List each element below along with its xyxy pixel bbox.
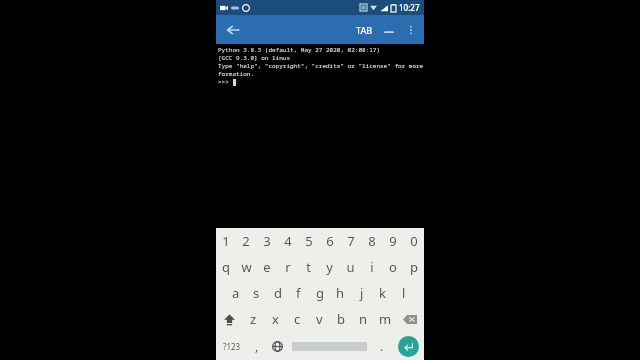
staticText: e bbox=[263, 258, 271, 276]
staticText: r bbox=[285, 258, 291, 276]
staticText: >>> bbox=[218, 78, 233, 86]
staticText: x bbox=[272, 310, 279, 328]
button[interactable]: z bbox=[243, 306, 264, 332]
button[interactable]: 4 bbox=[277, 228, 298, 254]
staticText: k bbox=[379, 284, 386, 302]
staticText: 7 bbox=[347, 232, 355, 250]
button[interactable]: x bbox=[264, 306, 286, 332]
staticText: q bbox=[222, 258, 230, 276]
staticText: 2 bbox=[242, 232, 250, 250]
button[interactable]: , bbox=[247, 332, 267, 360]
staticText: g bbox=[316, 284, 324, 302]
button[interactable]: o bbox=[382, 254, 403, 280]
button[interactable]: 3 bbox=[256, 228, 277, 254]
staticText: o bbox=[389, 258, 397, 276]
button[interactable]: . bbox=[372, 332, 392, 360]
staticText: 9 bbox=[389, 232, 397, 250]
button[interactable]: g bbox=[309, 280, 330, 306]
staticText: w bbox=[241, 258, 252, 276]
button[interactable]: 1 bbox=[216, 228, 236, 254]
staticText: h bbox=[336, 284, 345, 302]
button[interactable]: u bbox=[340, 254, 361, 280]
button[interactable]: 9 bbox=[382, 228, 403, 254]
button[interactable]: k bbox=[372, 280, 393, 306]
staticText: 8 bbox=[368, 232, 376, 250]
button[interactable]: b bbox=[330, 306, 352, 332]
button[interactable]: s bbox=[246, 280, 267, 306]
staticText: l bbox=[402, 284, 406, 302]
staticText: z bbox=[250, 310, 257, 328]
staticText: . bbox=[380, 338, 384, 354]
staticText: b bbox=[337, 310, 345, 328]
staticText: n bbox=[359, 310, 368, 328]
button[interactable]: Change language bbox=[267, 332, 287, 360]
button[interactable]: Python 3.8.3 (default, May 27 2020, 02:0… bbox=[216, 44, 424, 228]
button[interactable]: n bbox=[352, 306, 374, 332]
staticText: Python 3.8.3 (default, May 27 2020, 02:0… bbox=[218, 46, 381, 54]
staticText: Type "help", "copyright", "credits" or "… bbox=[218, 62, 424, 70]
staticText: p bbox=[410, 258, 418, 276]
staticText: 5 bbox=[305, 232, 313, 250]
button[interactable]: TAB bbox=[351, 20, 378, 40]
staticText: d bbox=[274, 284, 282, 302]
button[interactable]: 7 bbox=[340, 228, 361, 254]
button[interactable]: d bbox=[267, 280, 288, 306]
staticText: t bbox=[306, 258, 311, 276]
staticText: m bbox=[379, 310, 392, 328]
button[interactable]: i bbox=[361, 254, 382, 280]
staticText: c bbox=[294, 310, 301, 328]
button[interactable]: Shift bbox=[216, 306, 243, 332]
staticText: f bbox=[296, 284, 301, 302]
staticText: 4 bbox=[284, 232, 292, 250]
staticText: 6 bbox=[326, 232, 334, 250]
staticText: i bbox=[370, 258, 374, 276]
staticText: ?123 bbox=[223, 341, 241, 352]
button[interactable]: v bbox=[308, 306, 330, 332]
button[interactable]: m bbox=[374, 306, 396, 332]
staticText: 0 bbox=[410, 232, 418, 250]
button[interactable]: q bbox=[216, 254, 236, 280]
button[interactable]: j bbox=[351, 280, 372, 306]
staticText: 10:27 bbox=[399, 2, 420, 13]
button[interactable]: c bbox=[286, 306, 308, 332]
button[interactable]: 2 bbox=[236, 228, 256, 254]
button[interactable]: w bbox=[236, 254, 256, 280]
button[interactable]: a bbox=[226, 280, 246, 306]
button[interactable]: 8 bbox=[361, 228, 382, 254]
staticText: v bbox=[316, 310, 323, 328]
button[interactable]: ?123 bbox=[216, 332, 247, 360]
staticText: formation. bbox=[218, 70, 255, 78]
staticText: 3 bbox=[263, 232, 271, 250]
button[interactable]: h bbox=[330, 280, 351, 306]
button[interactable]: t bbox=[298, 254, 319, 280]
button[interactable]: Enter bbox=[392, 332, 424, 360]
staticText: TAB bbox=[356, 24, 373, 36]
button[interactable]: More options bbox=[400, 19, 422, 41]
button[interactable]: e bbox=[256, 254, 277, 280]
button[interactable]: r bbox=[277, 254, 298, 280]
button[interactable]: 6 bbox=[319, 228, 340, 254]
button[interactable]: Backspace bbox=[396, 306, 424, 332]
staticText: j bbox=[360, 284, 364, 302]
staticText: , bbox=[255, 338, 259, 354]
button[interactable]: Minimize bbox=[378, 19, 400, 41]
button[interactable]: Back bbox=[220, 17, 246, 43]
staticText: s bbox=[253, 284, 260, 302]
button[interactable]: l bbox=[393, 280, 414, 306]
button[interactable]: 0 bbox=[403, 228, 424, 254]
staticText: u bbox=[346, 258, 355, 276]
staticText: y bbox=[326, 258, 333, 276]
button[interactable]: Space bbox=[287, 332, 372, 360]
staticText: [GCC 9.3.0] on linux bbox=[218, 54, 291, 62]
button[interactable]: 5 bbox=[298, 228, 319, 254]
staticText: 1 bbox=[222, 232, 230, 250]
staticText: a bbox=[232, 284, 240, 302]
button[interactable]: y bbox=[319, 254, 340, 280]
button[interactable]: f bbox=[288, 280, 309, 306]
button[interactable]: p bbox=[403, 254, 424, 280]
